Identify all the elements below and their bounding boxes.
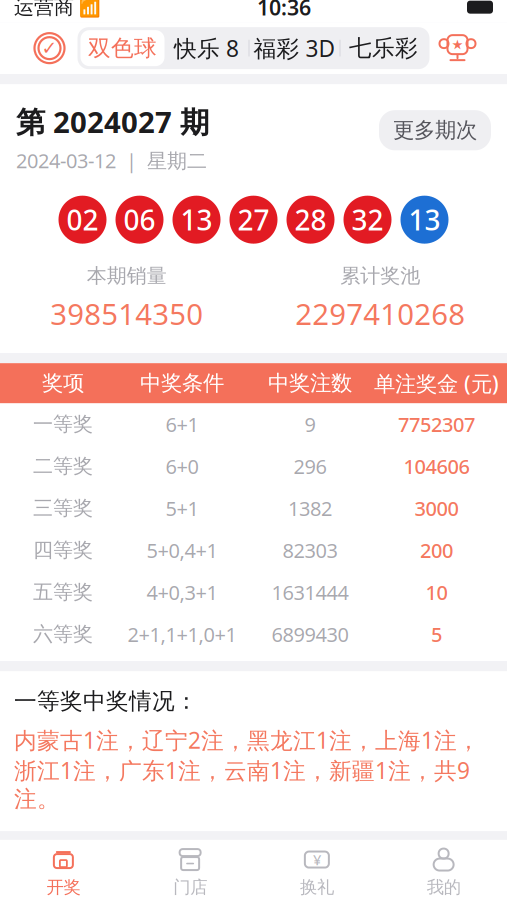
- button[interactable]: 更多期次: [379, 110, 491, 150]
- staticText: 运营商: [14, 0, 74, 19]
- staticText: 6+0: [165, 453, 198, 479]
- staticText: 1631444: [271, 579, 348, 605]
- staticText: 2297410268: [295, 294, 465, 333]
- staticText: 一等奖中奖情况：: [14, 687, 198, 715]
- staticText: 1382: [288, 495, 332, 521]
- staticText: 换礼: [300, 877, 334, 898]
- staticText: 6+1: [165, 411, 198, 437]
- staticText: 06: [123, 201, 155, 238]
- staticText: ★: [451, 37, 463, 52]
- button[interactable]: 快乐 8: [164, 30, 248, 66]
- staticText: 二等奖: [33, 454, 93, 478]
- staticText: 一等奖: [33, 412, 93, 436]
- staticText: 2+1,1+1,0+1: [127, 621, 236, 647]
- button[interactable]: 我的: [380, 840, 507, 900]
- staticText: 104606: [403, 453, 469, 479]
- staticText: 5+0,4+1: [146, 537, 217, 563]
- staticText: 快乐 8: [174, 33, 239, 63]
- staticText: 02: [66, 201, 98, 238]
- staticText: 3000: [414, 495, 458, 521]
- staticText: 累计奖池: [340, 264, 420, 288]
- staticText: 中奖注数: [268, 370, 352, 396]
- staticText: 双色球: [88, 34, 157, 62]
- staticText: 福彩 3D: [253, 33, 335, 63]
- staticText: 三等奖: [33, 496, 93, 520]
- staticText: 第 2024027 期: [16, 102, 209, 141]
- staticText: 我的: [427, 877, 461, 898]
- staticText: ✓: [41, 38, 57, 59]
- button[interactable]: ¥: [253, 840, 380, 900]
- staticText: 10:36: [257, 0, 311, 21]
- staticText: 更多期次: [393, 117, 477, 143]
- button[interactable]: 中奖查询: [31, 30, 67, 66]
- button[interactable]: 七乐彩: [340, 30, 426, 66]
- staticText: 296: [293, 453, 326, 479]
- staticText: 📶: [74, 0, 101, 19]
- staticText: 27: [237, 201, 269, 238]
- button[interactable]: 开奖: [0, 840, 127, 900]
- button[interactable]: 门店: [127, 840, 254, 900]
- button[interactable]: 福彩 3D: [249, 30, 339, 66]
- staticText: 9: [304, 411, 315, 437]
- staticText: 200: [420, 537, 453, 563]
- staticText: 2024-03-12 | 星期二: [16, 147, 207, 174]
- staticText: 开奖: [46, 877, 80, 898]
- staticText: 七乐彩: [349, 34, 418, 62]
- staticText: ¥: [313, 850, 321, 869]
- staticText: 四等奖: [33, 538, 93, 562]
- button[interactable]: 双色球: [80, 30, 164, 66]
- staticText: 门店: [173, 877, 207, 898]
- staticText: 中奖条件: [140, 370, 224, 396]
- button[interactable]: 排行榜: [439, 30, 475, 66]
- staticText: 奖项: [42, 370, 84, 396]
- staticText: 32: [351, 201, 383, 238]
- staticText: 398514350: [50, 294, 203, 333]
- staticText: 7752307: [398, 411, 475, 437]
- staticText: 六等奖: [33, 622, 93, 646]
- staticText: 13: [180, 201, 212, 238]
- staticText: 13: [408, 201, 440, 238]
- staticText: 5+1: [165, 495, 198, 521]
- staticText: 5: [431, 621, 442, 647]
- staticText: 本期销量: [87, 264, 167, 288]
- staticText: 82303: [282, 537, 337, 563]
- staticText: 内蒙古1注，辽宁2注，黑龙江1注，上海1注，浙江1注，广东1注，云南1注，新疆1…: [14, 725, 480, 813]
- staticText: 4+0,3+1: [146, 579, 217, 605]
- staticText: 单注奖金 (元): [374, 369, 499, 397]
- staticText: 28: [294, 201, 326, 238]
- staticText: 6899430: [271, 621, 348, 647]
- staticText: 五等奖: [33, 580, 93, 604]
- staticText: 10: [425, 579, 447, 605]
